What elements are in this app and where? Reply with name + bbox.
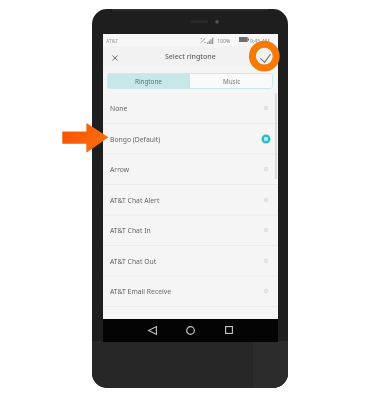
button[interactable]: None: [103, 93, 278, 124]
button[interactable]: Bongo (Default): [103, 124, 278, 155]
staticText: Arrow: [110, 165, 130, 174]
button[interactable]: AT&T Chat Out: [103, 246, 278, 277]
staticText: Bongo (Default): [110, 135, 161, 144]
staticText: AT&T Email Receive: [110, 287, 172, 296]
staticText: Select ringtone: [165, 52, 216, 62]
button[interactable]: AT&T Email Receive: [103, 276, 278, 307]
button[interactable]: AT&T Chat In: [103, 215, 278, 246]
button[interactable]: AT&T Chat Alert: [103, 185, 278, 216]
staticText: AT&T Chat Alert: [110, 196, 160, 205]
staticText: Music: [223, 77, 241, 86]
button[interactable]: Confirm selection: [254, 48, 276, 69]
staticText: Ringtone: [135, 77, 162, 86]
button[interactable]: Ringtone: [107, 73, 190, 89]
staticText: AT&T Chat Out: [110, 257, 157, 266]
button[interactable]: Arrow: [103, 154, 278, 185]
button[interactable]: Back: [142, 320, 162, 340]
staticText: AT&T Chat In: [110, 226, 151, 235]
button[interactable]: Close: [105, 48, 125, 68]
staticText: AT&T: [106, 37, 119, 44]
staticText: 9:45 AM: [250, 37, 270, 44]
staticText: None: [110, 104, 128, 113]
button[interactable]: Music: [190, 73, 273, 89]
button[interactable]: Recent apps: [219, 320, 239, 340]
staticText: 100%: [217, 37, 231, 44]
button[interactable]: Home: [180, 320, 200, 340]
